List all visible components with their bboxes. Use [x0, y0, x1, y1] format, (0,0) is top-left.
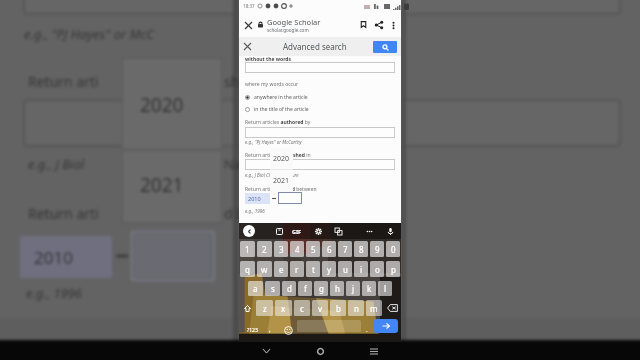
button[interactable]: 6 — [322, 241, 336, 257]
button[interactable]: Home — [293, 342, 347, 360]
button[interactable]: Symbols — [241, 318, 263, 342]
button[interactable]: 4 — [290, 241, 304, 257]
button[interactable]: Close search — [239, 38, 256, 55]
button[interactable]: Bookmark — [356, 17, 371, 32]
button[interactable]: 2020 — [270, 148, 293, 169]
staticText: e.g., 1996 — [245, 208, 265, 214]
button[interactable]: z — [256, 300, 273, 316]
button[interactable]: Share — [371, 17, 386, 32]
button[interactable]: m — [366, 300, 382, 316]
button[interactable]: k — [362, 281, 376, 296]
staticText: Return arti — [28, 204, 99, 223]
staticText: 2021 — [140, 172, 184, 198]
staticText: 4 — [295, 244, 300, 255]
button[interactable]: t — [306, 261, 320, 277]
button[interactable]: 7 — [338, 241, 352, 257]
button[interactable]: More options — [386, 18, 400, 32]
button[interactable]: mic — [385, 226, 396, 237]
button[interactable]: f — [298, 281, 312, 296]
button[interactable]: Period — [362, 318, 372, 342]
staticText: c — [300, 303, 304, 314]
staticText: d — [287, 283, 292, 294]
button[interactable]: d — [282, 281, 296, 296]
button[interactable]: 2 — [257, 241, 272, 257]
button[interactable]: 2021 — [270, 170, 293, 192]
staticText: Return articles published in — [245, 152, 311, 159]
button[interactable]: w — [257, 261, 272, 277]
button[interactable]: j — [346, 281, 360, 296]
button[interactable]: Search — [373, 41, 397, 53]
button[interactable]: r — [290, 261, 304, 277]
button[interactable]: Back — [239, 342, 293, 360]
button[interactable] — [278, 192, 302, 204]
staticText: 7 — [343, 244, 348, 255]
button[interactable]: anywhere in the article — [245, 92, 345, 102]
button[interactable]: h — [330, 281, 344, 296]
button[interactable]: Enter — [374, 319, 398, 333]
button[interactable]: Emoji — [281, 318, 295, 342]
button[interactable]: 2010 — [245, 193, 270, 204]
button[interactable]: 5 — [306, 241, 320, 257]
button[interactable]: i — [354, 261, 368, 277]
button[interactable]: c — [294, 300, 310, 316]
staticText: d b — [224, 204, 245, 223]
button[interactable]: e — [274, 261, 288, 277]
staticText: e.g., 1996 — [26, 284, 83, 302]
staticText: 0 — [391, 244, 396, 255]
button[interactable]: Backspace — [383, 298, 401, 318]
button[interactable]: s — [265, 281, 280, 296]
staticText: 2020 — [140, 92, 184, 118]
staticText: anywhere in the article — [254, 94, 308, 101]
button[interactable]: 9 — [370, 241, 384, 257]
button[interactable]: p — [386, 261, 400, 277]
button[interactable] — [245, 127, 395, 138]
staticText: 5 — [311, 244, 316, 255]
staticText: v — [318, 303, 323, 314]
button[interactable]: b — [330, 300, 346, 316]
staticText: Return arti — [28, 72, 99, 91]
button[interactable]: Back — [243, 225, 255, 237]
staticText: Advanced search — [283, 41, 347, 52]
button[interactable] — [245, 62, 395, 73]
staticText: e — [279, 264, 284, 275]
button[interactable]: Comma — [264, 318, 276, 342]
button[interactable]: x — [275, 300, 292, 316]
button[interactable]: n — [348, 300, 364, 316]
staticText: g — [319, 283, 324, 294]
button[interactable]: g — [314, 281, 328, 296]
button[interactable]: 3 — [274, 241, 288, 257]
button[interactable]: 0 — [386, 241, 400, 257]
staticText: 18:37 — [243, 3, 255, 9]
staticText: . — [366, 326, 368, 334]
button[interactable]: v — [312, 300, 328, 316]
button[interactable]: Recent apps — [347, 342, 401, 360]
button[interactable]: settings — [313, 226, 324, 237]
staticText: e.g., "PJ Hayes" or McCarthy — [245, 139, 302, 145]
button[interactable]: a — [248, 281, 263, 296]
button[interactable]: more — [364, 226, 375, 237]
button[interactable]: Shift — [239, 298, 255, 318]
button[interactable]: in the title of the article — [245, 104, 345, 114]
staticText: q — [245, 264, 250, 275]
button[interactable]: o — [370, 261, 384, 277]
staticText: m — [370, 303, 378, 314]
staticText: ?123 — [247, 327, 258, 334]
button[interactable]: translate — [333, 226, 344, 237]
staticText: e.g., J Biol — [28, 155, 85, 173]
staticText: 9 — [375, 244, 380, 255]
button[interactable]: 8 — [354, 241, 368, 257]
button[interactable]: y — [322, 261, 336, 277]
button[interactable]: clipboard — [274, 226, 285, 237]
button[interactable]: GIF — [290, 227, 303, 235]
button[interactable]: Close — [239, 16, 257, 34]
staticText: 2010 — [34, 246, 73, 269]
staticText: n — [354, 303, 359, 314]
button[interactable]: 1 — [240, 241, 255, 257]
button[interactable]: q — [240, 261, 255, 277]
button[interactable]: u — [338, 261, 352, 277]
button[interactable] — [245, 159, 395, 170]
staticText: o — [375, 264, 380, 275]
button[interactable]: l — [378, 281, 392, 296]
staticText: b — [336, 303, 341, 314]
button[interactable]: Space — [297, 320, 361, 332]
